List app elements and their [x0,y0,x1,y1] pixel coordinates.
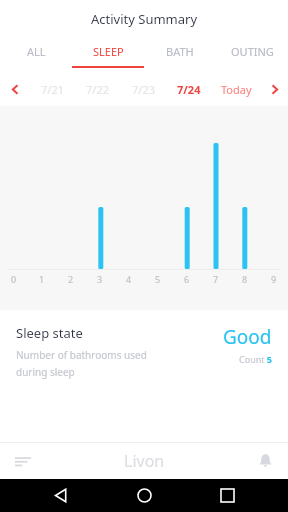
staticText: Good [223,324,272,350]
button[interactable]: Today [212,73,260,106]
staticText: BATH [166,44,194,59]
button[interactable]: Next dates [260,73,288,106]
staticText: 3 [97,273,103,285]
staticText: Livon [124,450,165,472]
button[interactable]: Sleep state [0,310,288,442]
staticText: Sleep state [16,324,83,342]
staticText: 0 [11,273,17,285]
staticText: 6 [184,273,190,285]
button[interactable]: Home [122,479,166,512]
staticText: 7 [213,273,219,285]
staticText: 7/22 [86,82,109,97]
staticText: 7/24 [177,82,201,97]
button[interactable]: Back [39,479,83,512]
button[interactable]: SLEEP [72,38,144,73]
button[interactable]: BATH [144,38,216,73]
staticText: 4 [126,273,132,285]
button[interactable]: Menu [0,442,46,479]
button[interactable]: 7/22 [75,73,120,106]
staticText: 9 [271,273,277,285]
button[interactable]: 7/21 [30,73,75,106]
button[interactable]: Notifications [242,442,288,479]
staticText: Activity Summary [91,10,198,28]
staticText: 8 [242,273,248,285]
staticText: Number of bathrooms used [16,348,147,362]
staticText: 2 [68,273,74,285]
staticText: during sleep [16,365,75,379]
staticText: Count 5 [239,353,272,365]
button[interactable]: Recent apps [205,479,249,512]
staticText: ALL [27,44,46,59]
staticText: 5 [155,273,161,285]
button[interactable]: 7/23 [120,73,166,106]
staticText: 1 [39,273,45,285]
button[interactable]: Previous dates [0,73,30,106]
staticText: Today [221,82,252,97]
staticText: SLEEP [93,44,124,59]
button[interactable]: OUTING [216,38,288,73]
staticText: OUTING [231,44,274,59]
button[interactable]: 7/24 [166,73,212,106]
button[interactable]: ALL [0,38,72,73]
staticText: 7/21 [41,82,64,97]
staticText: 7/23 [132,82,155,97]
